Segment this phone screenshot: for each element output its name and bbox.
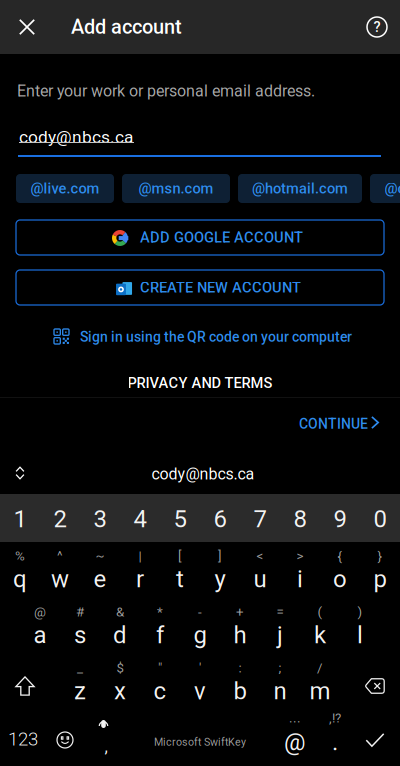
staticText: b — [233, 677, 246, 705]
staticText: ,!? — [329, 710, 341, 726]
button[interactable]: 4 — [120, 495, 160, 543]
staticText: n — [273, 677, 286, 705]
staticText: 9 — [333, 505, 346, 533]
staticText: e — [93, 565, 106, 593]
button[interactable]: = — [260, 600, 300, 656]
button[interactable]: cody@nbcs.ca — [123, 456, 283, 492]
staticText: ADD GOOGLE ACCOUNT — [140, 229, 303, 246]
button[interactable]: 3 — [80, 495, 120, 543]
button[interactable]: Microsoft SwiftKey — [125, 714, 275, 766]
staticText: k — [314, 621, 326, 649]
button[interactable]: 9 — [320, 495, 360, 543]
button[interactable]: - — [180, 600, 220, 656]
button[interactable]: [ — [160, 544, 200, 600]
button[interactable]: } — [360, 544, 400, 600]
button[interactable]: 0 — [360, 495, 400, 543]
staticText: @ — [284, 728, 306, 756]
button[interactable]: & — [100, 600, 140, 656]
button[interactable]: ~ — [80, 544, 120, 600]
button[interactable]: _ — [60, 656, 100, 712]
button[interactable]: ( — [300, 600, 340, 656]
button[interactable]: Done — [352, 712, 398, 766]
button[interactable]: ADD GOOGLE ACCOUNT — [16, 220, 384, 255]
button[interactable]: Sign in using the QR code on your comput… — [54, 322, 352, 352]
staticText: @outlook.com — [384, 180, 400, 197]
button[interactable]: ; — [260, 656, 300, 712]
button[interactable]: @msn.com — [122, 174, 230, 203]
button[interactable]: < — [240, 544, 280, 600]
staticText: " — [158, 660, 162, 676]
button[interactable]: 8 — [280, 495, 320, 543]
button[interactable]: @hotmail.com — [238, 174, 362, 203]
staticText: q — [13, 565, 27, 593]
button[interactable]: 123 — [0, 711, 48, 766]
button[interactable]: Close — [0, 0, 54, 54]
button[interactable]: Voice input — [82, 712, 124, 766]
button[interactable]: Help — [352, 0, 400, 54]
button[interactable]: 5 — [160, 495, 200, 543]
staticText: s — [74, 621, 86, 649]
staticText: t — [176, 565, 184, 593]
button[interactable]: PRIVACY AND TERMS — [110, 370, 290, 396]
button[interactable]: CONTINUE — [299, 409, 397, 439]
staticText: _ — [77, 660, 83, 676]
button[interactable]: Shift — [0, 658, 53, 714]
staticText: 123 — [8, 728, 38, 750]
button[interactable]: Emoji — [44, 712, 86, 766]
staticText: d — [113, 621, 127, 649]
button[interactable]: 7 — [240, 495, 280, 543]
button[interactable]: # — [60, 600, 100, 656]
staticText: ... — [289, 710, 301, 726]
button[interactable]: * — [140, 600, 180, 656]
button[interactable]: Backspace — [347, 658, 400, 714]
button[interactable]: @ — [20, 600, 60, 656]
staticText: o — [333, 565, 347, 593]
button[interactable]: ^ — [40, 544, 80, 600]
button[interactable]: " — [140, 656, 180, 712]
button[interactable]: $ — [100, 656, 140, 712]
staticText: PRIVACY AND TERMS — [127, 374, 272, 392]
staticText: @ — [34, 604, 46, 620]
staticText: @hotmail.com — [252, 180, 348, 197]
staticText: Enter your work or personal email addres… — [17, 82, 315, 100]
staticText: c — [153, 677, 166, 705]
staticText: : — [238, 660, 241, 676]
staticText: * — [157, 604, 163, 620]
button[interactable]: 6 — [200, 495, 240, 543]
staticText: l — [357, 621, 363, 649]
staticText: i — [297, 565, 303, 593]
button[interactable]: @live.com — [16, 174, 114, 203]
button[interactable]: { — [320, 544, 360, 600]
staticText: ? — [373, 18, 380, 36]
staticText: ) — [357, 604, 362, 620]
staticText: g — [193, 621, 206, 649]
button[interactable]: > — [280, 544, 320, 600]
staticText: { — [337, 548, 342, 564]
button[interactable]: Expand suggestions — [0, 451, 40, 495]
staticText: & — [116, 604, 124, 620]
staticText: p — [373, 565, 386, 593]
staticText: < — [256, 548, 263, 564]
staticText: cody@nbcs.ca — [19, 127, 133, 147]
button[interactable]: @outlook.com — [370, 174, 400, 203]
button[interactable]: | — [120, 544, 160, 600]
staticText: Microsoft SwiftKey — [154, 736, 246, 748]
button[interactable]: ' — [180, 656, 220, 712]
button[interactable]: ] — [200, 544, 240, 600]
staticText: Sign in using the QR code on your comput… — [80, 329, 352, 345]
button[interactable]: : — [220, 656, 260, 712]
staticText: cody@nbcs.ca — [151, 465, 254, 483]
button[interactable]: / — [300, 656, 340, 712]
button[interactable]: CREATE NEW ACCOUNT — [16, 270, 384, 305]
button[interactable]: 1 — [0, 495, 40, 543]
button[interactable]: ... — [275, 710, 315, 766]
button[interactable]: 2 — [40, 495, 80, 543]
staticText: - — [198, 604, 202, 620]
button[interactable]: + — [220, 600, 260, 656]
staticText: 8 — [293, 505, 306, 533]
button[interactable]: ,!? — [315, 710, 355, 766]
staticText: 7 — [253, 505, 266, 533]
button[interactable]: % — [0, 544, 40, 600]
button[interactable]: ) — [340, 600, 380, 656]
staticText: 4 — [133, 505, 146, 533]
